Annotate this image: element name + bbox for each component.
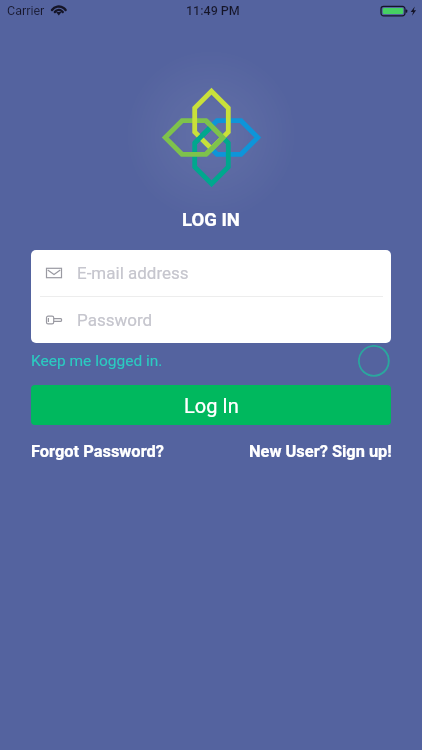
staticText: Forgot Password?: [31, 442, 164, 461]
button[interactable]: Keep me logged in toggle: [358, 345, 390, 377]
staticText: E-mail address: [77, 263, 189, 283]
staticText: Carrier: [7, 3, 45, 18]
staticText: 11:49 PM: [186, 3, 240, 18]
staticText: Keep me logged in.: [31, 352, 163, 370]
staticText: New User? Sign up!: [249, 442, 392, 461]
button[interactable]: Password: [31, 297, 391, 343]
button[interactable]: E-mail address: [31, 250, 391, 296]
staticText: Password: [77, 310, 153, 330]
button[interactable]: Log In: [31, 385, 391, 425]
staticText: Log In: [184, 394, 239, 417]
staticText: LOG IN: [182, 209, 240, 231]
button[interactable]: Forgot Password?: [31, 442, 164, 461]
button[interactable]: New User? Sign up!: [249, 442, 392, 461]
button[interactable]: Keep me logged in.: [31, 352, 163, 370]
